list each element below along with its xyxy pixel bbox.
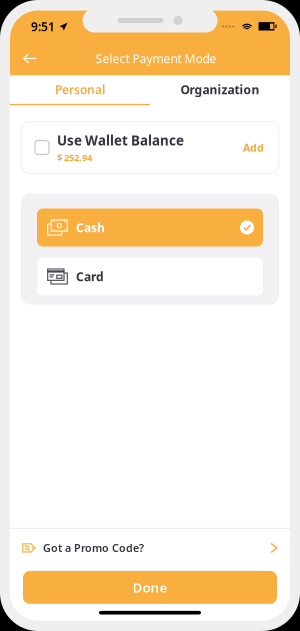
button[interactable]: Got a Promo Code? [10, 529, 290, 567]
staticText: Card [76, 268, 104, 284]
staticText: Got a Promo Code? [43, 541, 144, 555]
button[interactable]: Card [37, 257, 263, 295]
button[interactable]: Done [23, 571, 277, 604]
button[interactable]: Personal [10, 75, 150, 105]
staticText: Personal [55, 82, 105, 98]
button[interactable]: Organization [150, 75, 290, 105]
staticText: Done [132, 578, 167, 596]
staticText: Cash [76, 219, 105, 235]
staticText: Select Payment Mode [95, 50, 216, 66]
staticText: Use Wallet Balance [57, 131, 184, 149]
staticText: 9:51 [31, 18, 55, 34]
staticText: Organization [180, 82, 259, 98]
staticText: $ 252.94 [57, 151, 92, 164]
button[interactable]: Cash [37, 208, 263, 246]
button[interactable]: Back [10, 45, 50, 71]
button[interactable]: Use Wallet Balance [27, 132, 57, 162]
button[interactable]: Add [237, 133, 270, 162]
staticText: Add [243, 140, 264, 155]
